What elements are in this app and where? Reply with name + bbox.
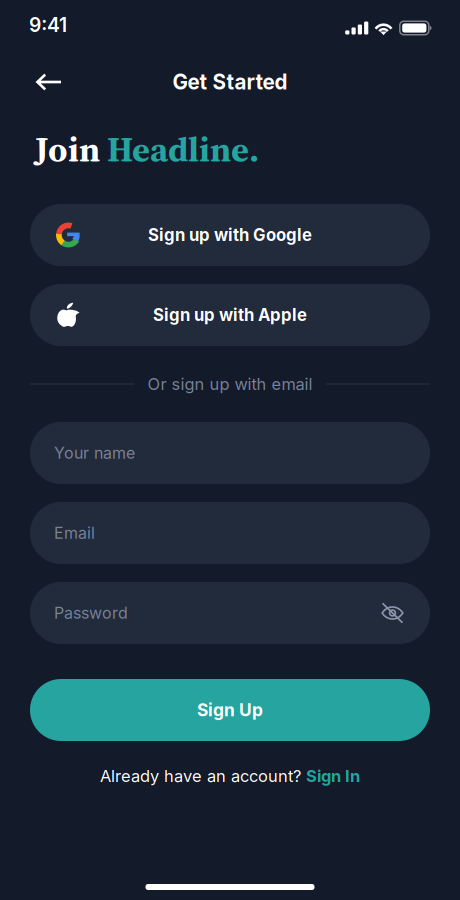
button[interactable]: Sign up with Google — [30, 204, 430, 266]
staticText: 9:41 — [29, 13, 67, 37]
staticText: Headline. — [107, 125, 259, 173]
staticText: Sign In — [306, 766, 360, 786]
staticText: Password — [54, 603, 128, 623]
button[interactable]: Sign Up — [30, 679, 430, 741]
staticText: Sign Up — [197, 699, 263, 720]
staticText: Already have an account? — [100, 766, 301, 786]
staticText: Sign up with Google — [148, 225, 312, 245]
staticText: Your name — [54, 443, 135, 463]
staticText: Sign up with Apple — [153, 305, 307, 325]
staticText: Get Started — [172, 69, 287, 94]
button[interactable]: Back — [27, 60, 71, 104]
button[interactable]: Already have an account? — [0, 741, 460, 802]
button[interactable]: Sign up with Apple — [30, 284, 430, 346]
staticText: Email — [54, 523, 95, 543]
staticText: Join — [35, 125, 107, 173]
staticText: Or sign up with email — [147, 374, 312, 394]
